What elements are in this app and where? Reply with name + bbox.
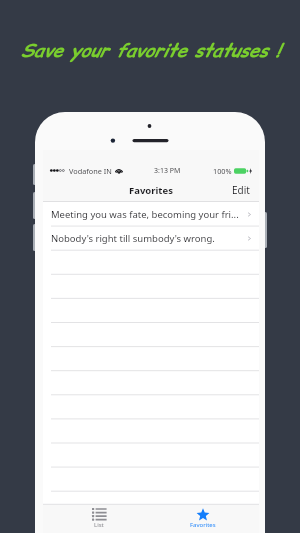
button[interactable]: Favorites [151, 504, 255, 533]
staticText: Favorites [190, 521, 216, 529]
button[interactable]: List [47, 504, 151, 533]
button[interactable]: Nobody's right till sumbody's wrong. [43, 226, 259, 250]
button[interactable]: Edit [222, 178, 259, 202]
staticText: Meeting you was fate, becoming your fri.… [51, 208, 245, 221]
staticText: Nobody's right till sumbody's wrong. [51, 232, 245, 245]
staticText: Favorites [129, 184, 173, 197]
staticText: Vodafone IN [69, 166, 112, 176]
staticText: 100% [213, 166, 232, 176]
staticText: List [94, 521, 104, 529]
button[interactable]: Meeting you was fate, becoming your fri.… [43, 202, 259, 226]
staticText: 3:13 PM [154, 166, 181, 176]
staticText: Save your favorite statuses ! [0, 38, 300, 63]
staticText: Edit [232, 183, 250, 197]
